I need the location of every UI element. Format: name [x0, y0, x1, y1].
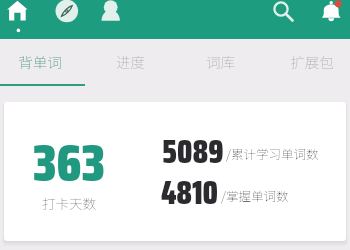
- button[interactable]: 363: [4, 102, 346, 241]
- staticText: /累计学习单词数: [226, 144, 319, 162]
- staticText: 词库: [206, 51, 235, 72]
- button[interactable]: 扩展包: [266, 39, 350, 83]
- button[interactable]: 进度: [85, 39, 176, 83]
- button[interactable]: Home: [4, 0, 32, 39]
- staticText: 扩展包: [290, 51, 334, 72]
- staticText: 背单词: [18, 51, 62, 72]
- staticText: 4810: [161, 168, 219, 218]
- button[interactable]: Search: [269, 0, 297, 28]
- button[interactable]: 背单词: [0, 39, 85, 83]
- staticText: 5089: [162, 127, 224, 177]
- button[interactable]: 词库: [175, 39, 266, 83]
- staticText: 363: [4, 122, 134, 204]
- staticText: 进度: [116, 51, 145, 72]
- staticText: 打卡天数: [4, 193, 134, 213]
- button[interactable]: Explore: [55, 0, 79, 24]
- button[interactable]: Profile: [99, 0, 123, 24]
- button[interactable]: Notifications: [320, 0, 344, 24]
- staticText: /掌握单词数: [221, 186, 289, 204]
